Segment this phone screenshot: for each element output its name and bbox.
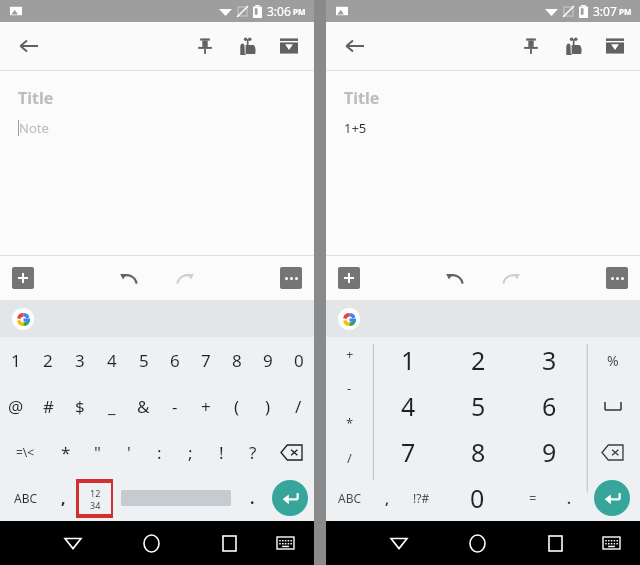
button[interactable]: Redo [168, 261, 202, 295]
button[interactable]: Back [34, 521, 112, 565]
button[interactable]: 4 [96, 337, 128, 383]
staticText: 3 [542, 343, 557, 377]
button[interactable]: Enter [272, 480, 308, 516]
button[interactable]: / [326, 440, 373, 475]
button[interactable]: ; [175, 429, 206, 475]
button[interactable]: Undo [112, 261, 146, 295]
button[interactable] [585, 429, 640, 475]
button[interactable]: ' [113, 429, 144, 475]
button[interactable]: Home [112, 521, 190, 565]
button[interactable]: $ [64, 383, 96, 429]
button[interactable]: 7 [190, 337, 221, 383]
button[interactable]: 4 [373, 383, 443, 429]
button[interactable]: Home [438, 521, 516, 565]
button[interactable]: 9 [514, 429, 585, 475]
button[interactable]: . [239, 475, 266, 521]
button[interactable]: 7 [373, 429, 443, 475]
button[interactable]: & [128, 383, 159, 429]
button[interactable]: Back [332, 24, 376, 68]
button[interactable]: : [144, 429, 175, 475]
staticText: . [250, 487, 255, 509]
button[interactable]: " [82, 429, 113, 475]
button[interactable]: % [585, 337, 640, 383]
button[interactable]: + [190, 383, 221, 429]
button[interactable]: = [513, 475, 553, 521]
button[interactable]: _ [96, 383, 128, 429]
staticText: - [172, 395, 178, 418]
button[interactable]: ( [221, 383, 252, 429]
button[interactable]: 5 [443, 383, 514, 429]
button[interactable]: * [326, 405, 373, 440]
button[interactable]: Google [12, 308, 34, 330]
button[interactable]: Space [113, 475, 239, 521]
button[interactable]: Keyboard [268, 521, 302, 565]
button[interactable]: Redo [494, 261, 528, 295]
button[interactable]: 2 [443, 337, 514, 383]
staticText: 3:06 [267, 3, 291, 19]
button[interactable]: 6 [514, 383, 585, 429]
button[interactable]: 0 [283, 337, 314, 383]
staticText: 0 [470, 481, 485, 515]
button[interactable]: 3 [514, 337, 585, 383]
button[interactable]: Pin [510, 25, 552, 67]
button[interactable]: Pin [184, 25, 226, 67]
button[interactable]: 6 [159, 337, 190, 383]
button[interactable] [268, 429, 314, 475]
staticText: $ [75, 395, 85, 418]
button[interactable]: * [50, 429, 82, 475]
staticText: & [137, 395, 150, 418]
button[interactable]: ABC [0, 475, 51, 521]
button[interactable]: Add [338, 267, 360, 289]
button[interactable]: Reminder [226, 25, 268, 67]
button[interactable]: Google [338, 308, 360, 330]
staticText: 4 [107, 349, 117, 372]
staticText: . [567, 489, 571, 508]
button[interactable]: 1 [0, 337, 32, 383]
button[interactable]: , [373, 475, 401, 521]
button[interactable]: Archive [268, 25, 310, 67]
button[interactable]: ) [252, 383, 283, 429]
button[interactable]: 9 [252, 337, 283, 383]
button[interactable]: 8 [443, 429, 514, 475]
button[interactable]: , [51, 475, 76, 521]
button[interactable]: ! [206, 429, 237, 475]
button[interactable]: More options [280, 267, 302, 289]
staticText: 2 [471, 343, 486, 377]
button[interactable]: Back [6, 24, 50, 68]
button[interactable]: / [283, 383, 314, 429]
button[interactable]: . [553, 475, 584, 521]
button[interactable]: Reminder [552, 25, 594, 67]
button[interactable]: - [159, 383, 190, 429]
button[interactable]: More options [606, 267, 628, 289]
button[interactable]: ABC [326, 475, 373, 521]
button[interactable]: Numeric keypad [76, 479, 113, 518]
button[interactable] [585, 383, 640, 429]
button[interactable]: + [326, 337, 373, 371]
button[interactable]: 0 [441, 475, 513, 521]
button[interactable]: =\< [0, 429, 50, 475]
button[interactable]: 3 [64, 337, 96, 383]
button[interactable]: Archive [594, 25, 636, 67]
staticText: , [385, 489, 389, 508]
button[interactable]: Keyboard [594, 521, 628, 565]
staticText: ? [249, 441, 257, 464]
staticText: 7 [401, 435, 416, 469]
button[interactable]: !?# [401, 475, 441, 521]
button[interactable]: Add [12, 267, 34, 289]
button[interactable]: @ [0, 383, 32, 429]
button[interactable]: Back [360, 521, 438, 565]
staticText: + [346, 345, 354, 363]
button[interactable]: 5 [128, 337, 159, 383]
button[interactable]: ? [237, 429, 268, 475]
button[interactable]: Enter [594, 480, 630, 516]
button[interactable]: Recents [516, 521, 594, 565]
button[interactable]: - [326, 371, 373, 405]
button[interactable]: 1 [373, 337, 443, 383]
button[interactable]: 8 [221, 337, 252, 383]
button[interactable]: # [32, 383, 64, 429]
button[interactable]: Undo [438, 261, 472, 295]
button[interactable]: 2 [32, 337, 64, 383]
button[interactable]: Recents [190, 521, 268, 565]
staticText: Note [19, 119, 49, 137]
staticText: ABC [14, 490, 38, 506]
